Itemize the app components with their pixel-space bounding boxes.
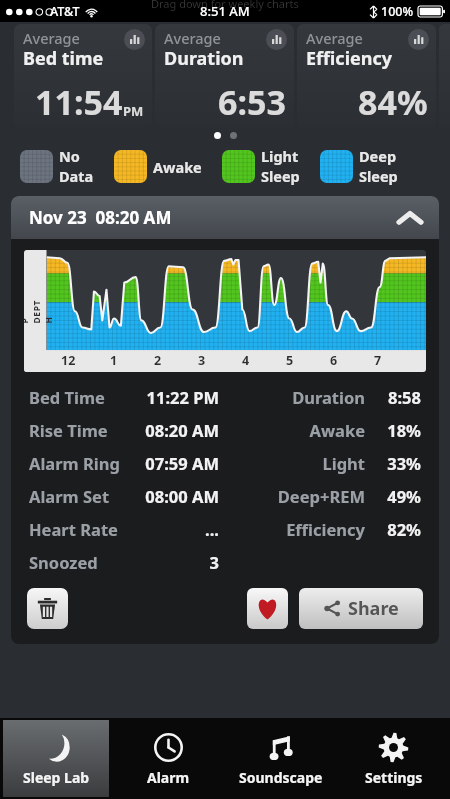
button[interactable]: Favorite	[247, 588, 288, 629]
staticText: Heart Rate	[29, 518, 129, 540]
staticText: Rise Time	[29, 419, 129, 441]
staticText: Efficiency	[231, 518, 365, 540]
staticText: Average	[164, 28, 221, 48]
staticText: Duration	[164, 46, 244, 71]
staticText: Bed Time	[29, 386, 129, 408]
staticText: SLEEP DEPTH	[24, 298, 54, 323]
staticText: Sleep	[359, 166, 398, 186]
staticText: 8:51 AM	[200, 2, 250, 20]
button[interactable]: Soundscape	[224, 720, 337, 797]
button[interactable]: Show chart	[266, 29, 287, 50]
staticText: AT&T	[50, 3, 80, 20]
staticText: Average	[306, 28, 363, 48]
staticText: Efficiency	[306, 46, 393, 71]
staticText: Soundscape	[239, 768, 323, 787]
staticText: Sleep Lab	[23, 768, 90, 787]
staticText: Deep+REM	[231, 485, 365, 507]
staticText: 11:54	[35, 79, 123, 125]
staticText: Light	[261, 146, 299, 166]
staticText: No	[59, 146, 80, 166]
button[interactable]: Average	[297, 24, 436, 128]
staticText: Alarm	[147, 768, 190, 787]
staticText: Nov 23 08:20 AM	[29, 206, 172, 229]
staticText: 100%	[381, 3, 414, 20]
button[interactable]: Collapse	[395, 203, 425, 233]
staticText: 8:58	[375, 386, 421, 408]
button[interactable]: Nov 23 08:20 AM	[11, 196, 439, 239]
staticText: Deep	[359, 146, 397, 166]
staticText: Light	[231, 452, 365, 474]
staticText: 33%	[375, 452, 421, 474]
staticText: 2	[154, 352, 162, 369]
button[interactable]: Settings	[337, 720, 450, 797]
staticText: 82%	[375, 518, 421, 540]
staticText: PM	[123, 102, 144, 120]
staticText: ...	[129, 518, 219, 540]
staticText: 5	[286, 352, 294, 369]
staticText: 1	[110, 352, 118, 369]
staticText: Average	[23, 28, 80, 48]
staticText: Settings	[365, 768, 423, 787]
staticText: Snoozed	[29, 551, 129, 573]
staticText: Data	[59, 166, 94, 186]
staticText: 11:22 PM	[129, 386, 219, 408]
staticText: 07:59 AM	[129, 452, 219, 474]
staticText: 12	[61, 352, 76, 369]
staticText: Duration	[231, 386, 365, 408]
staticText: 08:00 AM	[129, 485, 219, 507]
staticText: 84%	[358, 79, 428, 125]
staticText: Sleep	[261, 166, 300, 186]
staticText: 49%	[375, 485, 421, 507]
staticText: Alarm Set	[29, 485, 129, 507]
staticText: 3	[129, 551, 219, 573]
button[interactable]: Alarm	[112, 720, 224, 797]
button[interactable]: Delete	[27, 588, 68, 629]
staticText: Awake	[153, 157, 202, 177]
button[interactable]: Show chart	[124, 29, 145, 50]
staticText: Share	[348, 596, 399, 621]
button[interactable]: Average	[14, 24, 152, 128]
button[interactable]: Share	[299, 588, 423, 629]
staticText: 7	[374, 352, 382, 369]
staticText: Bed time	[23, 46, 104, 71]
staticText: 6:53	[218, 79, 286, 125]
button[interactable]: Sleep Lab	[3, 720, 109, 797]
staticText: Awake	[231, 419, 365, 441]
staticText: Alarm Ring	[29, 452, 129, 474]
staticText: 3	[198, 352, 206, 369]
button[interactable]: Average	[155, 24, 294, 128]
staticText: 08:20 AM	[129, 419, 219, 441]
staticText: Drag down for weekly charts	[151, 0, 299, 11]
staticText: 18%	[375, 419, 421, 441]
staticText: 6	[330, 352, 338, 369]
staticText: 4	[242, 352, 250, 369]
button[interactable]: Show chart	[408, 29, 429, 50]
